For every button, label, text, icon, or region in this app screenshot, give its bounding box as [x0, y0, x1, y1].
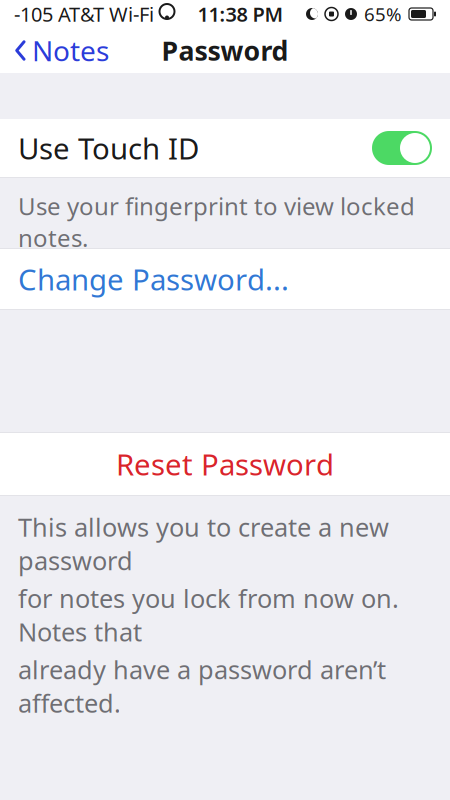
staticText: already have a password aren’t affected.	[18, 653, 386, 720]
button[interactable]: Notes	[4, 26, 119, 75]
staticText: 11:38 PM	[197, 1, 283, 27]
staticText: Use your fingerprint to view locked note…	[18, 190, 415, 254]
staticText: Password	[161, 33, 288, 68]
button[interactable]: Use Touch ID	[0, 119, 450, 177]
button[interactable]: Change Password...	[0, 249, 450, 309]
staticText: -105 AT&T Wi-Fi	[14, 1, 154, 27]
staticText: This allows you to create a new password	[18, 510, 389, 577]
staticText: 65%	[364, 2, 402, 26]
staticText: Use Touch ID	[18, 128, 199, 167]
button[interactable]: Reset Password	[0, 433, 450, 495]
staticText: Notes	[32, 32, 109, 69]
staticText: for notes you lock from now on. Notes th…	[18, 581, 399, 649]
staticText: Change Password...	[18, 259, 289, 298]
staticText: Reset Password	[116, 444, 334, 483]
